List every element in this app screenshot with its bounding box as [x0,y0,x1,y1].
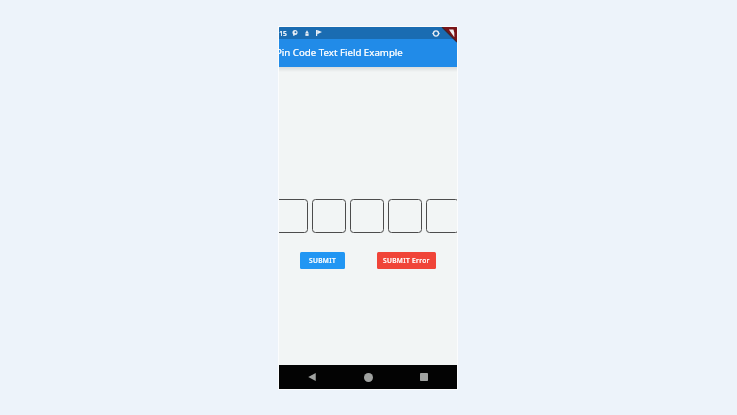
button[interactable]: Recents [414,367,434,387]
button[interactable] [388,199,422,233]
staticText: SUBMIT Error [383,256,430,265]
button[interactable] [350,199,384,233]
staticText: SUBMIT [309,256,336,265]
button[interactable]: Back [302,367,322,387]
button[interactable] [279,199,308,233]
button[interactable] [312,199,346,233]
staticText: 11:15 [279,29,287,38]
button[interactable]: SUBMIT [300,252,345,269]
button[interactable]: SUBMIT Error [377,252,436,269]
button[interactable]: Home [358,367,378,387]
button[interactable] [426,199,457,233]
staticText: Pin Code Text Field Example [279,46,403,59]
